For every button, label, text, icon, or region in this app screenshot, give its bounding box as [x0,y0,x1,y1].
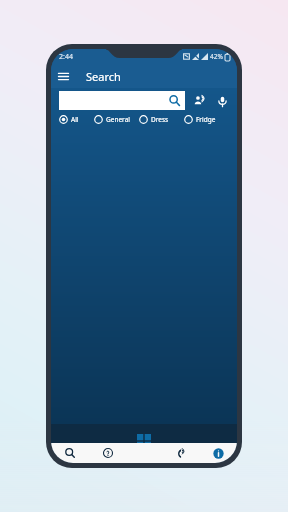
button[interactable]: Microphone [214,93,230,109]
button[interactable]: Help [89,443,126,463]
button[interactable]: Call [163,443,200,463]
button[interactable] [59,91,185,110]
staticText: 2:44 [59,52,73,62]
button[interactable]: Apps [136,433,152,449]
staticText: All [71,115,79,124]
button[interactable]: Fridge [184,115,229,124]
button[interactable]: All [59,115,94,124]
button[interactable]: Dress [139,115,184,124]
button[interactable]: General [94,115,139,124]
staticText: Dress [151,115,169,124]
staticText: 42% [210,52,223,61]
button[interactable]: Info [200,443,237,463]
button[interactable]: Voice assistant [192,93,208,109]
button[interactable]: Menu [51,64,75,88]
staticText: General [106,115,130,124]
staticText: Fridge [196,115,216,124]
staticText: Search [86,69,121,84]
button[interactable]: Search [51,443,89,463]
